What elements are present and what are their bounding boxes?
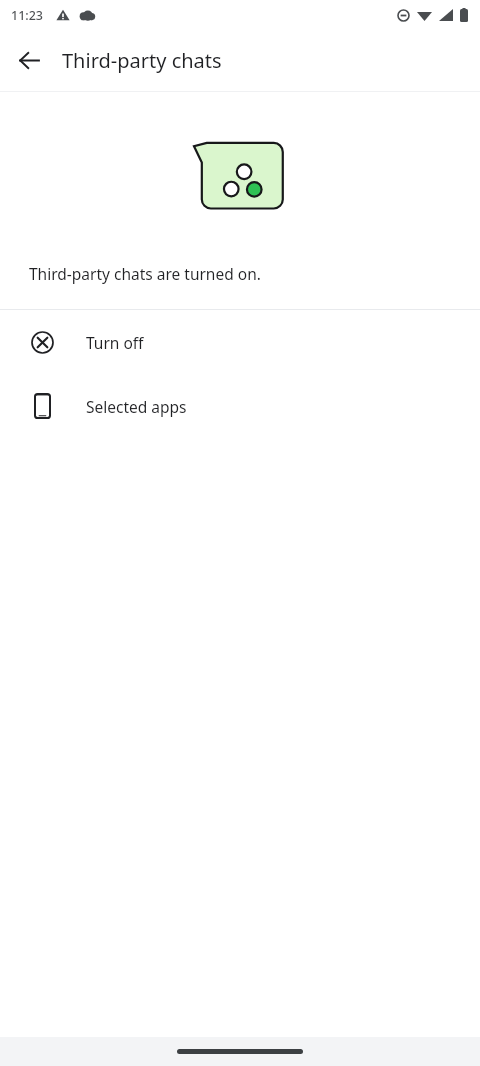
staticText: Selected apps [86, 396, 187, 417]
staticText: Turn off [86, 332, 144, 353]
staticText: 11:23 [11, 7, 44, 24]
button[interactable]: Back [9, 40, 49, 80]
staticText: Third-party chats are turned on. [29, 263, 261, 284]
button[interactable]: Selected apps [0, 374, 480, 438]
button[interactable]: Turn off [0, 310, 480, 374]
staticText: Third-party chats [62, 47, 222, 74]
